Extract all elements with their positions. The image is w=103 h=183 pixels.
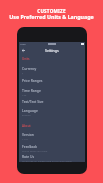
- button[interactable]: Feedback: [19, 144, 85, 152]
- staticText: 12:30: [20, 43, 26, 46]
- staticText: Tell us what you think: [22, 149, 48, 152]
- button[interactable]: Text/Text Size: [19, 99, 85, 104]
- button[interactable]: Price Ranges: [19, 78, 85, 83]
- button[interactable]: Version: [19, 132, 85, 140]
- button[interactable]: Language: [19, 108, 85, 116]
- staticText: Text/Text Size: [22, 99, 44, 104]
- button[interactable]: Back: [21, 48, 26, 53]
- staticText: CUSTOMIZE: [0, 8, 103, 14]
- staticText: About: [22, 124, 31, 128]
- staticText: $: [22, 71, 24, 74]
- staticText: Use Preferred Units & Language: [0, 13, 103, 20]
- button[interactable]: Time Range: [19, 88, 85, 96]
- staticText: Units: [22, 57, 30, 61]
- button[interactable]: Rate Us: [19, 154, 85, 162]
- staticText: 1.4.0: [22, 137, 28, 140]
- staticText: 12h: [22, 93, 27, 96]
- staticText: Version: [22, 132, 34, 137]
- button[interactable]: Currency: [19, 66, 85, 74]
- staticText: Rate Us: [22, 154, 35, 159]
- staticText: Settings: [45, 48, 59, 53]
- staticText: Time Range: [22, 88, 41, 93]
- staticText: Currency: [22, 66, 37, 71]
- staticText: English: [22, 113, 31, 116]
- staticText: Feedback: [22, 144, 38, 149]
- staticText: Language: [22, 108, 38, 113]
- staticText: If you like us, please give us a 5 star …: [22, 159, 72, 162]
- staticText: Price Ranges: [22, 78, 43, 83]
